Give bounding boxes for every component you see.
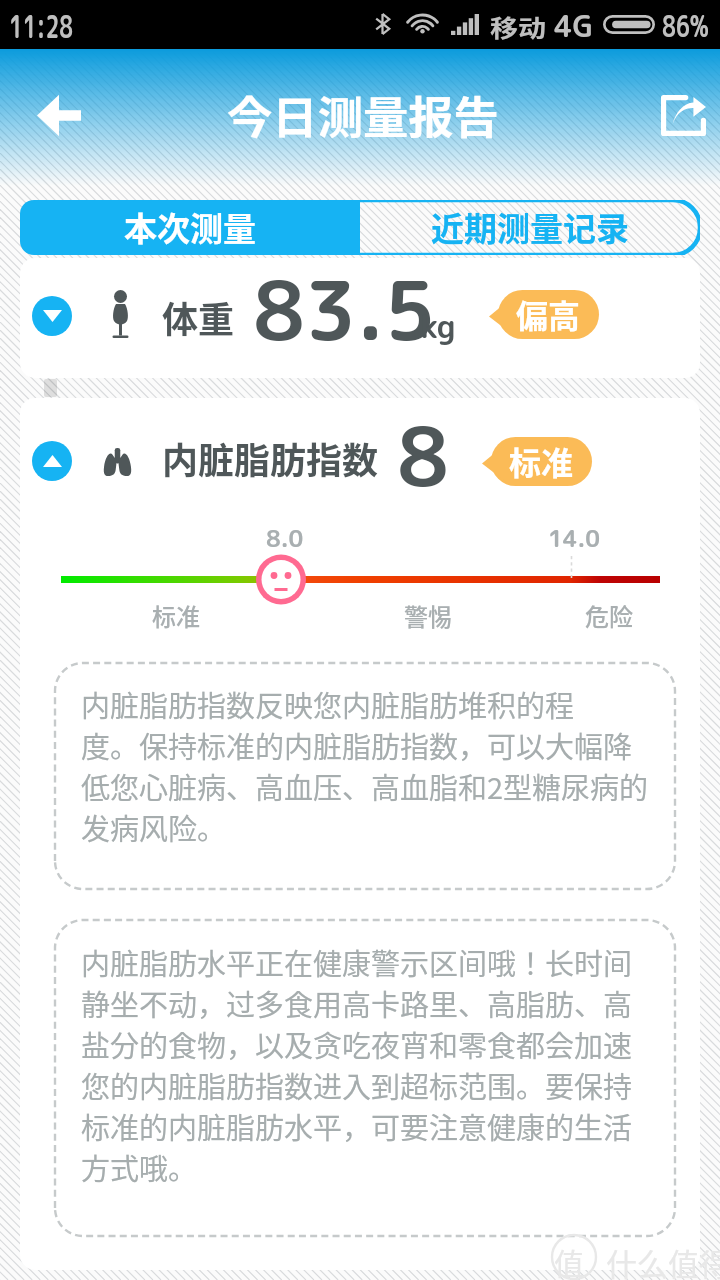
staticText: 今日测量报告 (227, 83, 499, 147)
button[interactable]: Collapse weight (20, 258, 700, 378)
button[interactable]: 本次测量 (20, 200, 360, 255)
staticText: 警惕 (404, 598, 452, 633)
staticText: 体重 (162, 291, 235, 343)
staticText: 14.0 (548, 522, 600, 554)
staticText: 83.5 (253, 258, 436, 366)
staticText: 内脏脂肪指数 (162, 432, 379, 484)
button[interactable]: Expand visceral fat (32, 441, 72, 481)
staticText: 标准 (509, 438, 574, 484)
button[interactable]: 近期测量记录 (360, 200, 700, 255)
button[interactable]: Collapse weight (32, 296, 72, 336)
staticText: 8 (397, 399, 449, 512)
staticText: 86% (662, 6, 709, 46)
button[interactable]: Back (15, 78, 103, 152)
staticText: 移动 (490, 9, 546, 44)
staticText: 4G (554, 6, 594, 46)
staticText: 什么值得买 (606, 1240, 720, 1280)
staticText: kg (420, 304, 456, 349)
staticText: 内脏脂肪水平正在健康警示区间哦！长时间 静坐不动，过多食用高卡路里、高脂肪、高 … (81, 941, 633, 1188)
staticText: 危险 (585, 598, 633, 633)
staticText: 近期测量记录 (431, 203, 629, 251)
staticText: 偏高 (516, 291, 581, 337)
button[interactable]: 偏高 (489, 290, 599, 339)
staticText: 11:28 (9, 4, 73, 49)
button[interactable]: Share (647, 80, 719, 150)
staticText: 本次测量 (124, 203, 256, 251)
staticText: 内脏脂肪指数反映您内脏脂肪堆积的程 度。保持标准的内脏脂肪指数，可以大幅降 低您… (81, 683, 649, 848)
staticText: 标准 (152, 598, 200, 633)
staticText: 值 (554, 1240, 584, 1280)
button[interactable]: 标准 (482, 437, 592, 486)
staticText: 8.0 (266, 522, 304, 554)
